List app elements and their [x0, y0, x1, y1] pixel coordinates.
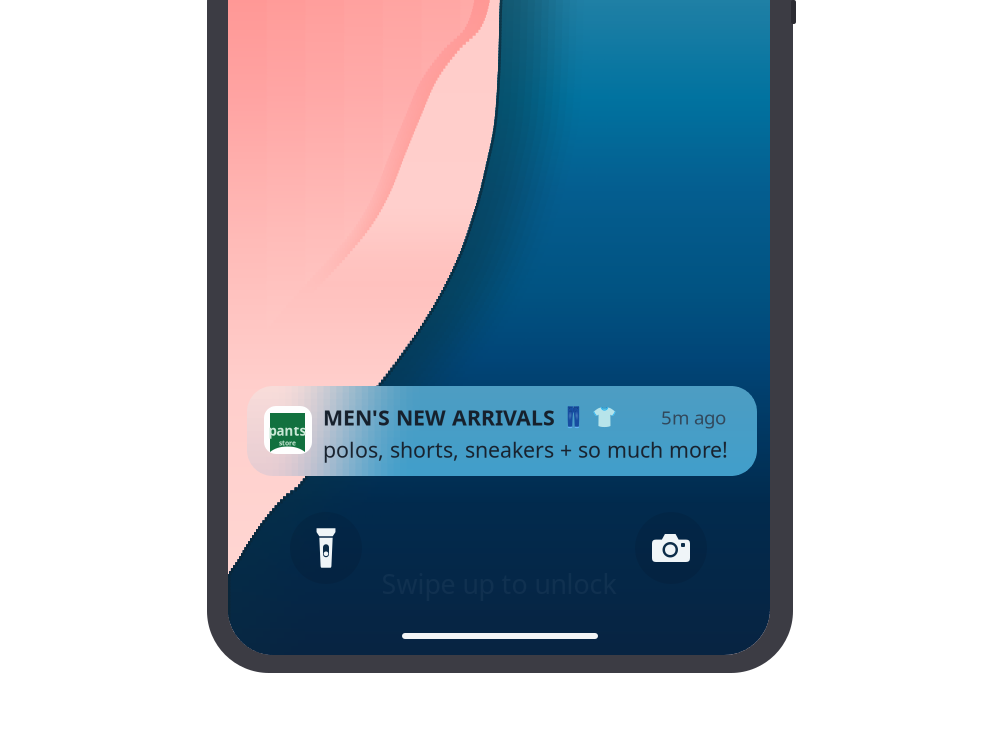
- staticText: 👕: [592, 406, 617, 429]
- staticText: store: [279, 438, 296, 447]
- staticText: polos, shorts, sneakers + so much more!: [323, 435, 728, 464]
- staticText: Swipe up to unlock: [381, 566, 616, 601]
- staticText: pants: [268, 422, 306, 439]
- staticText: 5m ago: [661, 405, 726, 430]
- button[interactable]: Flashlight: [290, 512, 362, 584]
- staticText: MEN'S NEW ARRIVALS: [323, 403, 555, 431]
- button[interactable]: Camera: [635, 512, 707, 584]
- button[interactable]: pants: [247, 386, 757, 476]
- staticText: 👖: [561, 406, 586, 429]
